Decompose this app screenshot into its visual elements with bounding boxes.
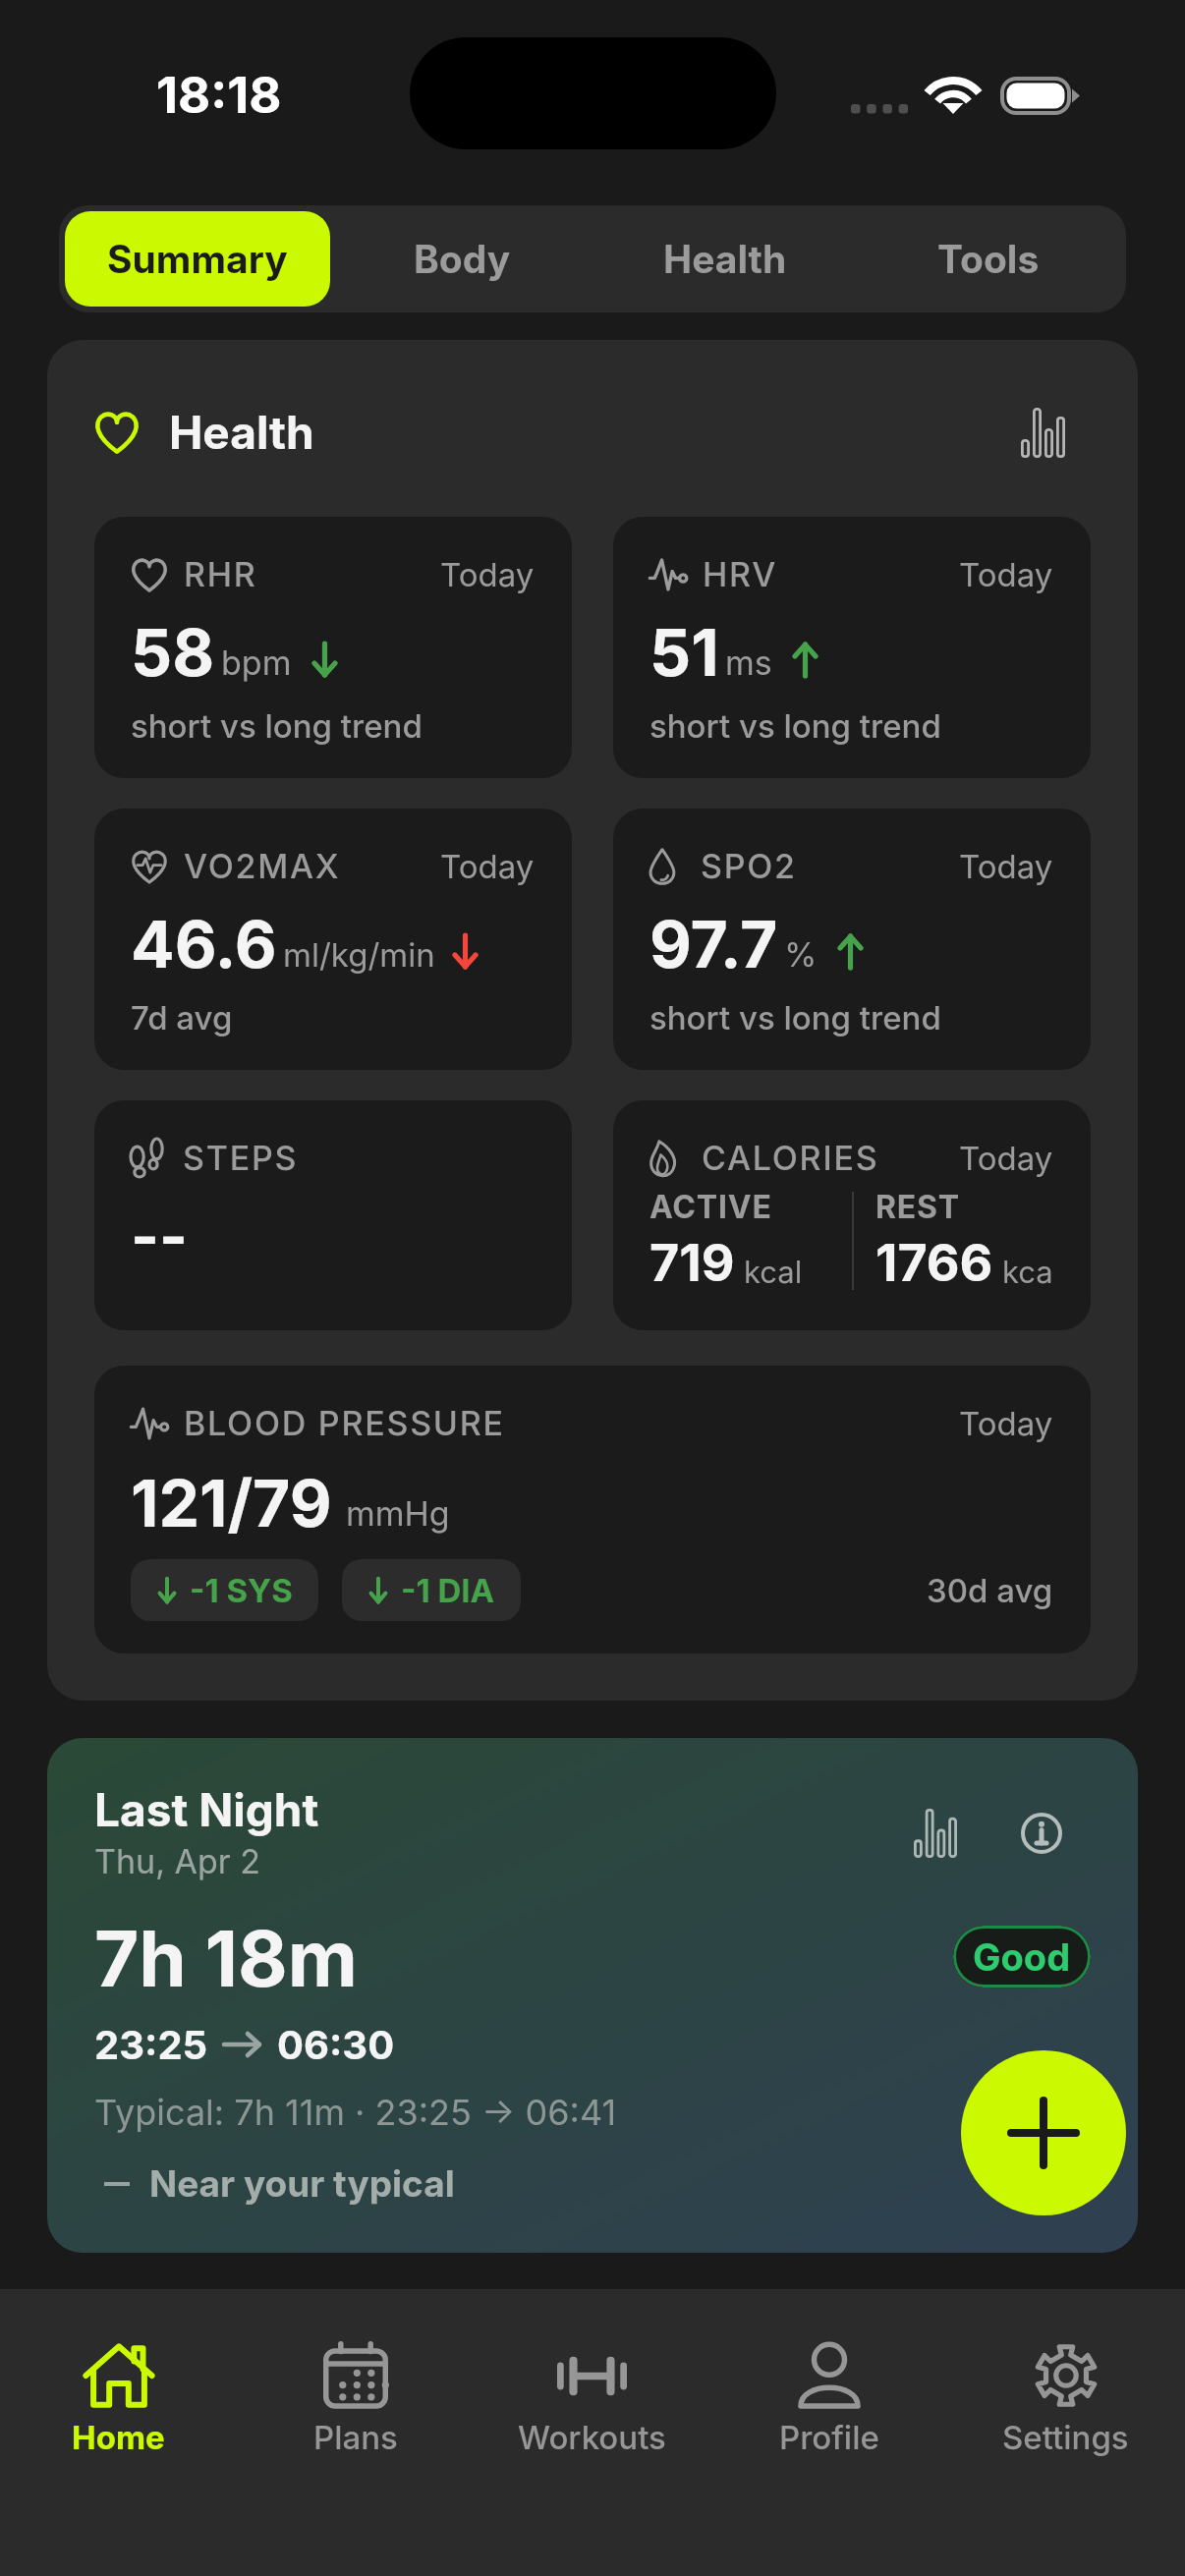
staticText: 18:18 [156,65,282,126]
staticText: ml/kg/min [283,935,435,975]
button[interactable]: Health [593,211,857,307]
staticText: Health [663,236,787,282]
staticText: Last Night [94,1782,319,1837]
staticText: 46.6 [131,905,277,983]
staticText: Workouts [518,2418,666,2457]
staticText: Plans [313,2418,398,2457]
staticText: BLOOD PRESSURE [184,1403,505,1443]
button[interactable]: Settings [947,2343,1184,2457]
staticText: mmHg [346,1493,450,1534]
button[interactable]: Body [330,211,593,307]
staticText: RHR [184,554,257,594]
button[interactable]: CALORIES [613,1100,1091,1330]
staticText: -1 SYS [190,1571,293,1610]
staticText: Tools [937,236,1040,282]
staticText: 23:25 [94,2021,208,2068]
button[interactable]: VO2MAX [94,809,572,1070]
staticText: CALORIES [702,1138,879,1178]
staticText: REST [875,1188,960,1226]
staticText: Body [414,236,511,282]
staticText: 51 [649,613,719,692]
staticText: Today [440,555,535,594]
staticText: % [784,934,818,975]
staticText: HRV [703,554,778,594]
staticText: Health [169,405,314,460]
staticText: Settings [1002,2418,1129,2457]
staticText: Good [973,1934,1071,1980]
button[interactable]: Summary [65,211,330,307]
button[interactable]: RHR [94,517,572,778]
staticText: short vs long trend [649,998,941,1037]
staticText: VO2MAX [184,846,341,886]
staticText: 7d avg [131,998,233,1037]
staticText: ms [725,643,772,683]
staticText: kcal [1002,1254,1053,1291]
button[interactable]: Sleep chart [914,1809,957,1858]
staticText: 06:30 [277,2021,395,2068]
staticText: Summary [107,236,288,282]
staticText: 121/79 [131,1464,332,1542]
staticText: Profile [779,2418,879,2457]
staticText: 58 [131,613,215,692]
staticText: 1766 [875,1232,993,1294]
staticText: 7h 18m [94,1912,358,2004]
staticText: Thu, Apr 2 [94,1841,260,1881]
button[interactable]: Profile [710,2343,947,2457]
staticText: -- [131,1200,189,1273]
button[interactable]: BLOOD PRESSURE [94,1366,1091,1653]
staticText: SPO2 [701,846,797,886]
staticText: Today [959,1139,1053,1178]
button[interactable]: Home [0,2343,237,2457]
staticText: -1 DIA [401,1571,495,1610]
staticText: 30d avg [927,1571,1053,1610]
button[interactable]: Charts [1021,408,1065,458]
button[interactable]: SPO2 [613,809,1091,1070]
staticText: Today [440,847,535,886]
staticText: Today [959,555,1053,594]
button[interactable]: -1 DIA [342,1559,521,1621]
staticText: kcal [744,1254,803,1291]
staticText: Near your typical [149,2161,455,2206]
button[interactable]: Plans [237,2343,474,2457]
button[interactable]: Info [1021,1813,1062,1854]
staticText: bpm [221,643,292,683]
button[interactable]: STEPS [94,1100,572,1330]
button[interactable]: Tools [857,211,1120,307]
staticText: 97.7 [649,905,778,983]
button[interactable]: Add [961,2050,1126,2215]
staticText: Home [72,2418,165,2457]
button[interactable]: Good [953,1926,1091,1988]
staticText: Today [959,847,1053,886]
staticText: Typical: 7h 11m · 23:25 → 06:41 [94,2091,617,2134]
staticText: 719 [649,1232,735,1294]
button[interactable]: Workouts [474,2343,710,2457]
staticText: short vs long trend [131,706,423,746]
staticText: short vs long trend [649,706,941,746]
button[interactable]: -1 SYS [131,1559,318,1621]
staticText: Today [959,1404,1053,1443]
button[interactable]: HRV [613,517,1091,778]
staticText: ACTIVE [649,1188,772,1226]
staticText: STEPS [183,1138,299,1178]
